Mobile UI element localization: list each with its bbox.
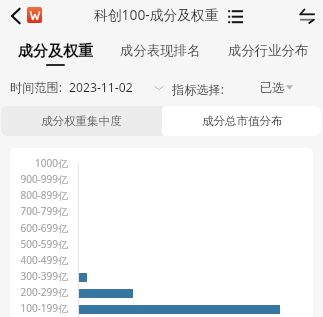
button[interactable]: 成分表现排名 <box>112 28 208 68</box>
staticText: 800-899亿 <box>20 188 68 202</box>
button[interactable]: 成分总市值分布 <box>162 106 321 136</box>
staticText: 时间范围: <box>10 79 63 96</box>
staticText: 100-199亿 <box>20 301 68 315</box>
button[interactable]: 成分权重集中度 <box>1 106 161 136</box>
staticText: 成分权重集中度 <box>41 114 122 128</box>
button[interactable]: 时间范围: <box>10 72 164 102</box>
button[interactable]: App <box>27 7 42 23</box>
staticText: 1000亿 <box>35 156 68 170</box>
button[interactable]: 成分及权重 <box>9 28 101 68</box>
staticText: 2023-11-02 <box>69 79 133 96</box>
button[interactable]: Back <box>4 4 28 28</box>
staticText: 已选 <box>260 80 285 95</box>
staticText: 300-399亿 <box>20 269 68 283</box>
staticText: 700-799亿 <box>20 204 68 218</box>
staticText: 900-999亿 <box>20 172 68 186</box>
staticText: 600-699亿 <box>20 221 68 235</box>
button[interactable]: Switch <box>294 2 320 28</box>
staticText: 指标选择: <box>172 81 225 98</box>
staticText: 成分总市值分布 <box>202 114 283 128</box>
staticText: 成分行业分布 <box>228 42 309 59</box>
staticText: 200-299亿 <box>20 285 68 299</box>
staticText: 科创100-成分及权重 <box>94 5 219 24</box>
button[interactable]: 成分行业分布 <box>220 28 316 68</box>
staticText: 400-499亿 <box>20 253 68 267</box>
staticText: 成分及权重 <box>18 42 93 61</box>
button[interactable]: 已选 <box>260 72 300 102</box>
staticText: 500-599亿 <box>20 237 68 251</box>
staticText: 成分表现排名 <box>120 42 201 59</box>
